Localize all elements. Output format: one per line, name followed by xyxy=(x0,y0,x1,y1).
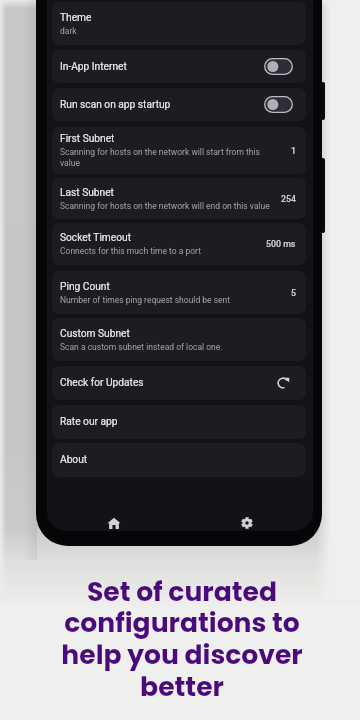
button[interactable]: Check for updates xyxy=(276,376,290,390)
staticText: 500 ms xyxy=(266,239,296,249)
button[interactable]: Last Subnet xyxy=(52,178,306,219)
staticText: Check for Updates xyxy=(60,377,144,389)
button[interactable]: In-App Internet xyxy=(52,50,306,83)
staticText: Scanning for hosts on the network will e… xyxy=(60,201,270,211)
staticText: Number of times ping request should be s… xyxy=(60,295,231,305)
staticText: 1 xyxy=(291,146,296,156)
button[interactable]: Custom Subnet xyxy=(52,318,306,361)
staticText: Rate our app xyxy=(60,416,118,428)
staticText: 5 xyxy=(291,288,296,298)
staticText: Set of curated configurations to help yo… xyxy=(52,573,312,706)
staticText: Last Subnet xyxy=(60,187,114,199)
button[interactable]: Rate our app xyxy=(52,405,306,439)
staticText: About xyxy=(60,454,88,466)
staticText: dark xyxy=(60,26,77,36)
button[interactable]: Ping Count xyxy=(52,271,306,314)
staticText: Scanning for hosts on the network will s… xyxy=(60,147,274,168)
staticText: Theme xyxy=(60,12,92,24)
button[interactable]: Toggle In-App Internet xyxy=(264,58,293,75)
staticText: Run scan on app startup xyxy=(60,99,171,111)
staticText: In-App Internet xyxy=(60,61,127,73)
button[interactable]: Check for Updates xyxy=(52,366,306,400)
staticText: Connects for this much time to a port xyxy=(60,246,201,256)
staticText: Scan a custom subnet instead of local on… xyxy=(60,342,223,352)
button[interactable]: Theme xyxy=(52,2,306,45)
staticText: Ping Count xyxy=(60,281,110,293)
button[interactable]: Settings xyxy=(180,497,313,547)
staticText: First Subnet xyxy=(60,133,115,145)
button[interactable]: Socket Timeout xyxy=(52,223,306,265)
button[interactable]: About xyxy=(52,443,306,477)
button[interactable]: Toggle Run scan on app startup xyxy=(264,96,293,113)
staticText: Socket Timeout xyxy=(60,232,131,244)
button[interactable]: Home xyxy=(47,497,180,547)
button[interactable]: First Subnet xyxy=(52,127,306,174)
staticText: Custom Subnet xyxy=(60,328,130,340)
button[interactable]: Run scan on app startup xyxy=(52,88,306,121)
staticText: 254 xyxy=(281,194,296,204)
